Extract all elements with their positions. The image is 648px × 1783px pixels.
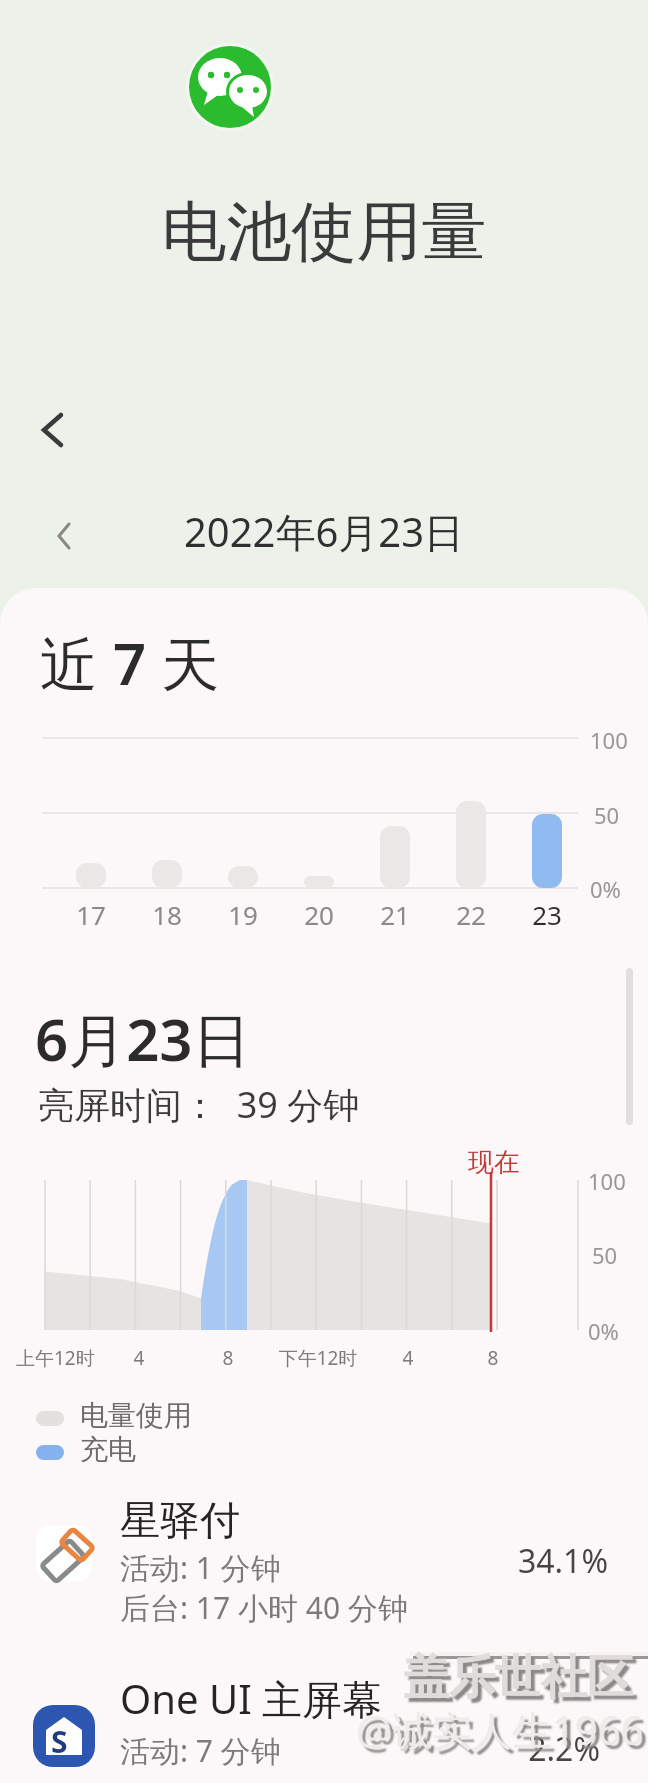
staticText: 活动: 7 分钟 (120, 1730, 281, 1771)
staticText: 21 (365, 897, 425, 932)
staticText: 8 (453, 1345, 533, 1371)
button[interactable] (38, 413, 66, 447)
staticText: 现在 (468, 1146, 520, 1179)
staticText: 22 (441, 897, 501, 932)
button[interactable] (0, 1660, 648, 1783)
staticText: 8 (188, 1345, 268, 1371)
staticText: 34.1% (498, 1539, 608, 1583)
button[interactable] (53, 521, 77, 551)
staticText: 17 (61, 897, 121, 932)
staticText: 充电 (80, 1432, 136, 1467)
staticText: 亮屏时间： 39 分钟 (38, 1080, 360, 1129)
staticText: 4 (368, 1345, 448, 1371)
staticText: 电池使用量 (0, 191, 648, 273)
staticText: 2022年6月23日 (0, 504, 648, 559)
staticText: 6月23日 (35, 999, 251, 1078)
staticText: 盖乐世社区 (403, 1649, 633, 1707)
staticText: 后台: 17 小时 40 分钟 (120, 1587, 408, 1628)
staticText: 100 (588, 1166, 626, 1196)
staticText: 100 (590, 725, 628, 755)
button[interactable] (0, 1490, 648, 1640)
staticText: 近 7 天 (40, 623, 220, 702)
staticText: 上午12时 (16, 1345, 95, 1371)
staticText: 2.2% (500, 1727, 600, 1771)
staticText: @诚实人生1966 (356, 1702, 644, 1757)
staticText: 星驿付 (120, 1495, 240, 1545)
staticText: 20 (289, 897, 349, 932)
staticText: 4 (99, 1345, 179, 1371)
staticText: 50 (594, 800, 620, 830)
staticText: 19 (213, 897, 273, 932)
staticText: S (51, 1721, 68, 1762)
staticText: 18 (137, 897, 197, 932)
staticText: 下午12时 (258, 1345, 378, 1371)
staticText: 电量使用 (80, 1398, 192, 1433)
staticText: 活动: 1 分钟 (120, 1547, 281, 1588)
staticText: 50 (592, 1240, 618, 1270)
staticText: One UI 主屏幕 (120, 1671, 383, 1726)
staticText: 0% (588, 1316, 619, 1346)
staticText: 23 (517, 897, 577, 932)
staticText: 0% (590, 874, 621, 904)
